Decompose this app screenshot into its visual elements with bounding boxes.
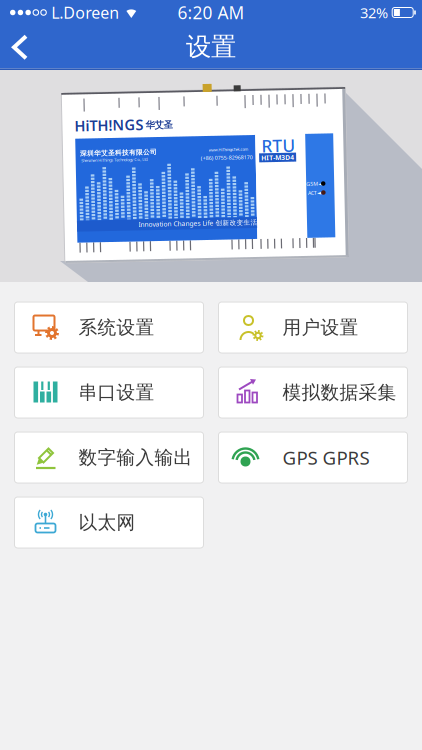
- staticText: 6:20 AM: [177, 1, 244, 24]
- staticText: Shenzhen HiThings Technology Co., Ltd.: [81, 155, 148, 161]
- staticText: 华艾圣: [146, 118, 173, 130]
- staticText: 32%: [360, 3, 388, 22]
- button[interactable]: 模拟数据采集: [218, 367, 407, 418]
- staticText: 模拟数据采集: [282, 381, 396, 404]
- staticText: (+86) 0755-82968170: [201, 154, 253, 162]
- staticText: 设置: [186, 31, 236, 62]
- staticText: www.HiThingsTek.com: [209, 147, 249, 153]
- staticText: 系统设置: [78, 316, 154, 339]
- staticText: 深圳华艾圣科技有限公司: [80, 147, 157, 155]
- staticText: L.Doreen: [51, 2, 119, 23]
- button[interactable]: GPS GPRS: [218, 432, 407, 483]
- staticText: GSM◄: [306, 182, 322, 190]
- staticText: 以太网: [78, 511, 135, 534]
- staticText: HiTH!NGS: [75, 113, 144, 133]
- button[interactable]: 数字输入输出: [14, 432, 203, 483]
- button[interactable]: Back: [0, 25, 40, 69]
- button[interactable]: 以太网: [14, 497, 203, 548]
- staticText: GPS GPRS: [282, 445, 369, 470]
- button[interactable]: 串口设置: [14, 367, 203, 418]
- staticText: 用户设置: [282, 316, 358, 339]
- staticText: Innovation Changes Life 创新改变生活: [137, 219, 256, 227]
- staticText: ACT◄: [307, 191, 320, 199]
- button[interactable]: 用户设置: [218, 302, 407, 353]
- staticText: HIT-M3D4: [261, 155, 294, 163]
- staticText: 串口设置: [78, 381, 154, 404]
- staticText: RTU: [262, 135, 296, 158]
- button[interactable]: 系统设置: [14, 302, 203, 353]
- staticText: 数字输入输出: [78, 446, 192, 469]
